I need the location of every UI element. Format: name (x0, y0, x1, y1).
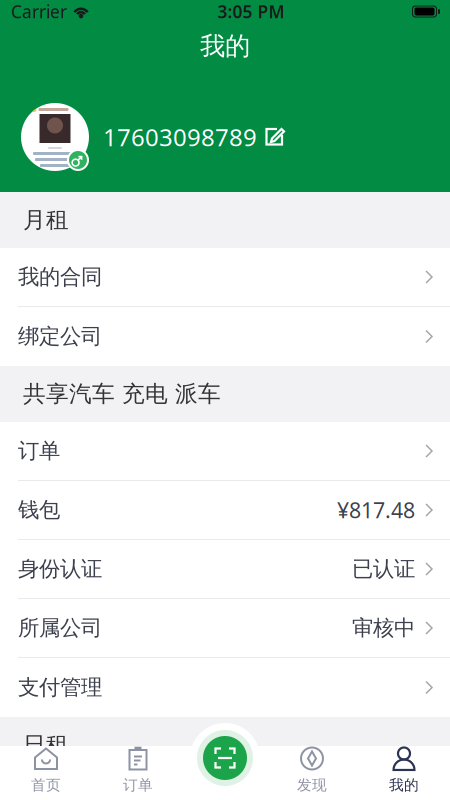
staticText: 3:05 PM (217, 0, 284, 23)
staticText: 发现 (297, 776, 327, 794)
staticText: ¥817.48 (337, 496, 415, 524)
staticText: 共享汽车 充电 派车 (23, 380, 221, 408)
button[interactable]: 钱包 (0, 481, 450, 540)
button[interactable]: 发现 (266, 746, 358, 799)
button[interactable]: 绑定公司 (0, 307, 450, 366)
staticText: 日租 (23, 731, 69, 759)
staticText: 首页 (31, 776, 61, 794)
staticText: Carrier (11, 0, 67, 23)
button[interactable]: 我的 (358, 746, 450, 799)
staticText: 月租 (23, 206, 69, 234)
button[interactable]: 所属公司 (0, 599, 450, 658)
staticText: 钱包 (18, 497, 60, 523)
button[interactable]: 支付管理 (0, 658, 450, 717)
staticText: 绑定公司 (18, 323, 102, 350)
staticText: 17603098789 (103, 121, 257, 153)
staticText: 订单 (18, 438, 60, 464)
staticText: 我的 (200, 30, 250, 61)
staticText: 订单 (123, 776, 153, 794)
staticText: 审核中 (352, 615, 415, 641)
button[interactable]: 首页 (0, 746, 92, 799)
staticText: 身份认证 (18, 556, 102, 582)
staticText: 我的合同 (18, 264, 102, 290)
button[interactable]: 订单 (0, 422, 450, 481)
button[interactable]: 订单 (92, 746, 184, 799)
button[interactable]: 扫一扫 (190, 723, 260, 793)
staticText: 所属公司 (18, 615, 102, 641)
staticText: 我的 (389, 776, 419, 794)
button[interactable]: 身份认证 (0, 540, 450, 599)
staticText: 支付管理 (18, 674, 102, 701)
button[interactable]: 我的合同 (0, 248, 450, 307)
staticText: 已认证 (352, 556, 415, 582)
